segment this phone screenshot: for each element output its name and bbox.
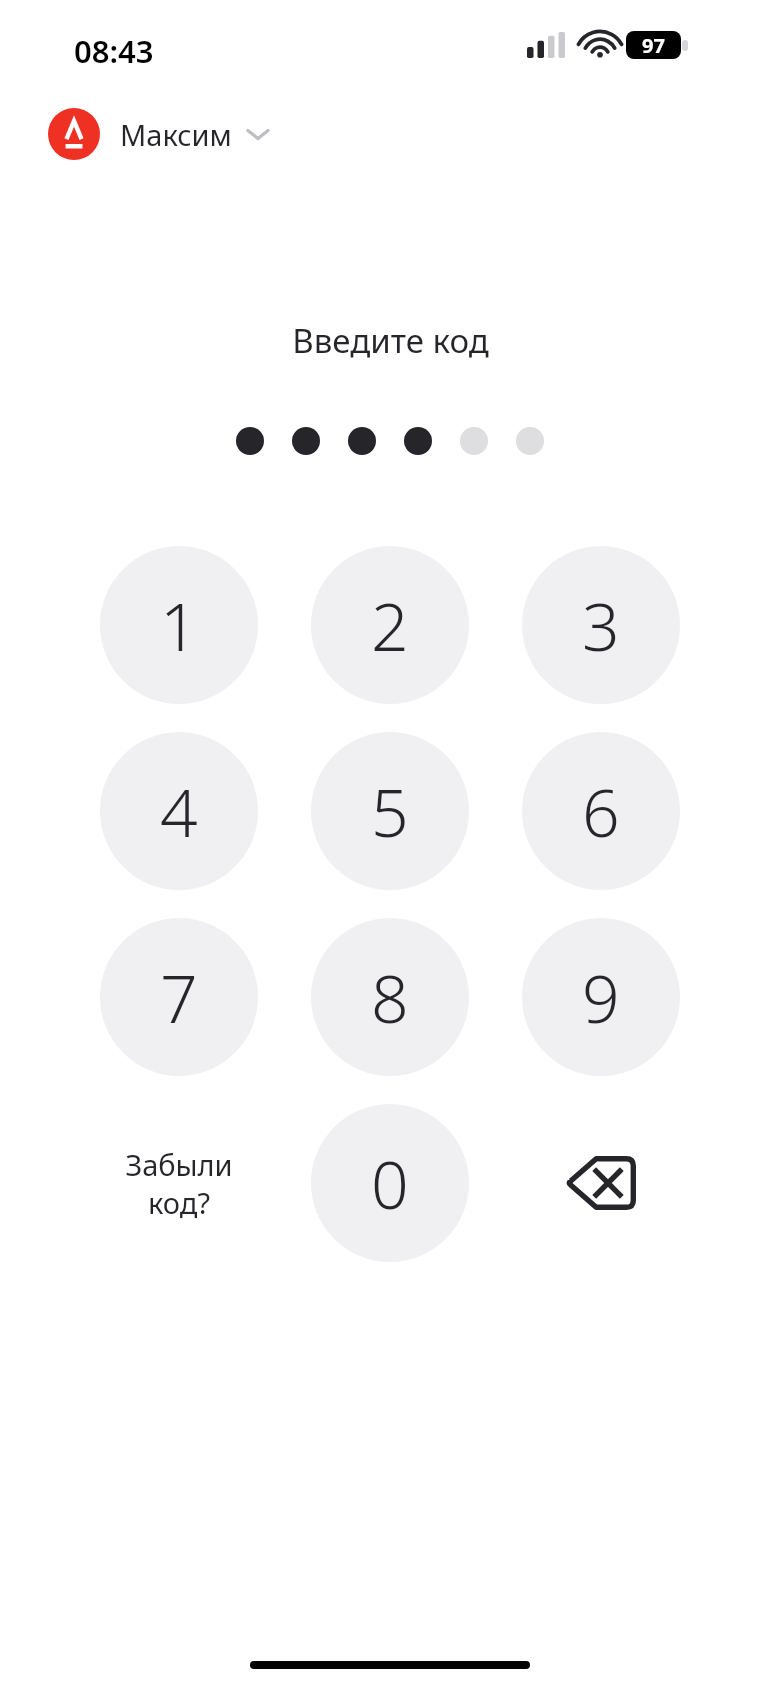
staticText: 5 — [371, 766, 409, 856]
staticText: 8 — [371, 952, 409, 1042]
staticText: 4 — [160, 766, 198, 856]
button[interactable]: 6 — [522, 732, 680, 890]
button[interactable]: 0 — [311, 1104, 469, 1262]
button[interactable]: 2 — [311, 546, 469, 704]
staticText: 3 — [582, 580, 620, 670]
button[interactable]: 3 — [522, 546, 680, 704]
staticText: 7 — [160, 952, 198, 1042]
staticText: 0 — [371, 1138, 409, 1228]
button[interactable]: 4 — [100, 732, 258, 890]
button[interactable]: 7 — [100, 918, 258, 1076]
button[interactable]: Максим — [44, 102, 274, 166]
button[interactable]: 1 — [100, 546, 258, 704]
staticText: Максим — [120, 115, 232, 154]
staticText: 97 — [642, 32, 665, 59]
staticText: 2 — [371, 580, 409, 670]
button[interactable]: 5 — [311, 732, 469, 890]
button[interactable]: 9 — [522, 918, 680, 1076]
staticText: 9 — [582, 952, 620, 1042]
button[interactable]: Удалить — [522, 1104, 680, 1262]
staticText: Введите код — [292, 318, 489, 363]
staticText: Забыли код? — [125, 1145, 233, 1222]
staticText: 08:43 — [74, 30, 154, 72]
button[interactable]: Забыли код? — [100, 1104, 258, 1262]
staticText: 6 — [582, 766, 620, 856]
button[interactable]: 8 — [311, 918, 469, 1076]
staticText: 1 — [160, 580, 198, 670]
